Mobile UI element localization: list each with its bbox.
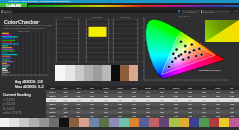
staticText: 0.88 [127, 91, 141, 93]
staticText: 0.79 [169, 115, 183, 117]
staticText: 0.83 [99, 103, 113, 105]
staticText: 0.45 [155, 103, 169, 105]
staticText: 0.57 [183, 95, 197, 97]
staticText: 0.64 [72, 107, 85, 109]
staticText: 0.49 [85, 91, 99, 93]
staticText: 0.37 [59, 99, 72, 101]
staticText: 0.18 [141, 95, 155, 97]
staticText: Patch 1 [46, 91, 59, 93]
staticText: 0.92 [183, 115, 197, 117]
button[interactable]: Session [3, 10, 12, 13]
staticText: 0.97 [99, 111, 113, 113]
button[interactable]: Patch 5 [46, 106, 239, 110]
staticText: Meas Y [127, 87, 141, 89]
staticText: – □ ✕ [231, 10, 239, 13]
staticText: 0.84 [197, 103, 211, 105]
staticText: 0.64 [183, 99, 197, 101]
staticText: CalMAN [6, 3, 22, 7]
staticText: Patch 2 [46, 95, 59, 97]
staticText: 0.90 [211, 99, 225, 101]
staticText: 0.19 [127, 103, 141, 105]
staticText: 0.32 [141, 103, 155, 105]
button[interactable]: Patch 4 [46, 102, 239, 106]
staticText: Delta E 2000 [18, 30, 30, 33]
staticText: CIE 1931 xy [179, 15, 190, 18]
button[interactable]: Patch 6 [46, 110, 239, 114]
staticText: Name [46, 87, 59, 89]
staticText: 0.96 [113, 103, 127, 105]
staticText: 0.26 [127, 107, 141, 109]
staticText: ColorChecker [4, 18, 40, 26]
button[interactable]: Workflow [182, 10, 200, 13]
staticText: Trg y [72, 87, 85, 89]
button[interactable]: ColorChecker [201, 10, 230, 13]
staticText: 0.63 [85, 99, 99, 101]
staticText: Avg dE2000: 2.8 [15, 79, 43, 84]
button[interactable]: Measured colour swatch [205, 20, 239, 42]
staticText: Patch 3 [46, 99, 59, 101]
staticText: 0.78 [183, 107, 197, 109]
button[interactable]: Patch 1 [46, 90, 239, 94]
staticText: Gamma [64, 16, 72, 19]
staticText: Max dE2000: 5.2 [15, 84, 44, 89]
staticText: 0.89 [225, 91, 239, 93]
staticText: Lum% [211, 87, 225, 89]
button[interactable]: Latest news: CalMAN 5 Release • New Disp… [0, 0, 239, 3]
staticText: 0.44 [59, 103, 72, 105]
button[interactable]: CalMAN home [0, 3, 27, 7]
staticText: 0.76 [211, 91, 225, 93]
staticText: 0.91 [197, 107, 211, 109]
staticText: Patch 6 [46, 111, 59, 113]
button[interactable]: Patch 7 [46, 114, 239, 118]
staticText: 0.50 [72, 99, 85, 101]
staticText: 0.20 [225, 103, 239, 105]
staticText: 0.38 [155, 99, 169, 101]
staticText: 0.56 [85, 95, 99, 97]
button[interactable]: Patch 2 [46, 94, 239, 98]
staticText: 0.82 [113, 95, 127, 97]
staticText: Meas y [113, 87, 127, 89]
staticText: Meas x [99, 87, 113, 89]
button[interactable]: Application menu [1, 10, 4, 13]
staticText: ColorChecker [203, 11, 215, 13]
staticText: Patch 7 [46, 115, 59, 117]
staticText: 0.83 [211, 95, 225, 97]
staticText: Sat% [183, 87, 197, 89]
button[interactable]: Patch 3 [46, 98, 239, 102]
staticText: Err [225, 87, 239, 89]
